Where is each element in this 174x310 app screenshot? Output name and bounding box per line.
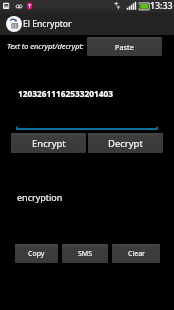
button[interactable]: Paste bbox=[87, 37, 162, 56]
button[interactable]: Clear bbox=[112, 244, 160, 263]
staticText: Decrypt bbox=[108, 137, 143, 150]
button[interactable]: El Encryptor home bbox=[0, 13, 174, 35]
button[interactable]: Decrypt bbox=[88, 133, 163, 153]
staticText: encryption bbox=[17, 191, 63, 203]
button[interactable]: 12032611162533201403 bbox=[0, 60, 174, 130]
staticText: 12032611162533201403 bbox=[18, 88, 113, 99]
staticText: El Encryptor bbox=[23, 18, 72, 30]
staticText: Clear bbox=[128, 249, 145, 259]
staticText: SMS bbox=[78, 249, 93, 259]
staticText: Copy bbox=[28, 249, 45, 259]
button[interactable]: Copy bbox=[15, 244, 58, 263]
staticText: Encrypt bbox=[32, 137, 66, 150]
staticText: Paste bbox=[115, 42, 134, 52]
staticText: 13:33 bbox=[150, 0, 173, 12]
button[interactable]: Encrypt bbox=[11, 133, 86, 153]
button[interactable]: SMS bbox=[62, 244, 108, 263]
staticText: Text to encrypt/decrypt: bbox=[7, 41, 84, 51]
